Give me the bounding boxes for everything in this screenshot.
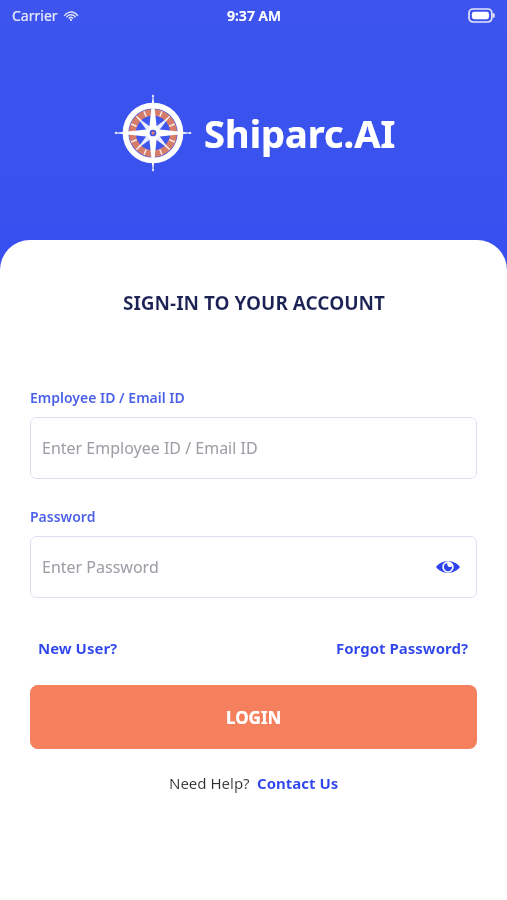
staticText: 9:37 AM bbox=[227, 6, 281, 25]
staticText: Need Help? bbox=[169, 773, 250, 793]
staticText: SIGN-IN TO YOUR ACCOUNT bbox=[123, 290, 385, 316]
staticText: Password bbox=[30, 507, 96, 526]
staticText: Shiparc.AI bbox=[204, 107, 396, 159]
staticText: Employee ID / Email ID bbox=[30, 388, 185, 407]
staticText: Carrier bbox=[12, 6, 58, 25]
button[interactable]: Forgot Password? bbox=[328, 634, 477, 662]
staticText: Forgot Password? bbox=[336, 638, 469, 658]
staticText: New User? bbox=[38, 638, 118, 658]
button[interactable]: New User? bbox=[30, 634, 126, 662]
staticText: LOGIN bbox=[226, 706, 282, 729]
staticText: Contact Us bbox=[257, 773, 339, 793]
button[interactable]: Enter Employee ID / Email ID bbox=[30, 417, 477, 479]
button[interactable]: Show password bbox=[431, 550, 465, 584]
staticText: Enter Password bbox=[42, 556, 159, 578]
button[interactable]: Enter Password bbox=[30, 536, 477, 598]
button[interactable]: LOGIN bbox=[30, 685, 477, 749]
staticText: Enter Employee ID / Email ID bbox=[42, 437, 258, 459]
button[interactable]: Contact Us bbox=[257, 773, 339, 793]
